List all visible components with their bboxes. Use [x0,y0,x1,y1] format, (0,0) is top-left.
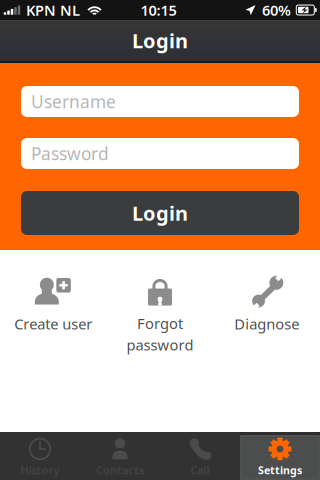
staticText: Forgot [137,313,183,333]
button[interactable]: Username [21,86,299,117]
button[interactable]: Create user [0,274,107,354]
staticText: Password [31,142,109,165]
staticText: Settings [258,463,302,477]
staticText: 10:15 [140,0,176,20]
button[interactable]: Settings [240,432,320,480]
button[interactable]: History [0,432,80,480]
button[interactable]: Call [160,432,240,480]
staticText: Login [132,200,188,226]
button[interactable]: Password [21,138,299,169]
staticText: password [126,335,193,354]
button[interactable]: Diagnose [213,274,320,354]
button[interactable]: Contacts [80,432,160,480]
staticText: KPN NL [26,0,80,20]
staticText: Username [31,90,116,113]
button[interactable]: Forgot [107,274,213,354]
staticText: Diagnose [234,314,299,333]
staticText: Login [132,27,188,54]
staticText: 60% [262,0,291,20]
staticText: History [20,463,59,477]
button[interactable]: Login [21,191,299,235]
staticText: Create user [14,314,92,333]
staticText: Call [190,463,209,477]
staticText: Contacts [96,463,144,477]
